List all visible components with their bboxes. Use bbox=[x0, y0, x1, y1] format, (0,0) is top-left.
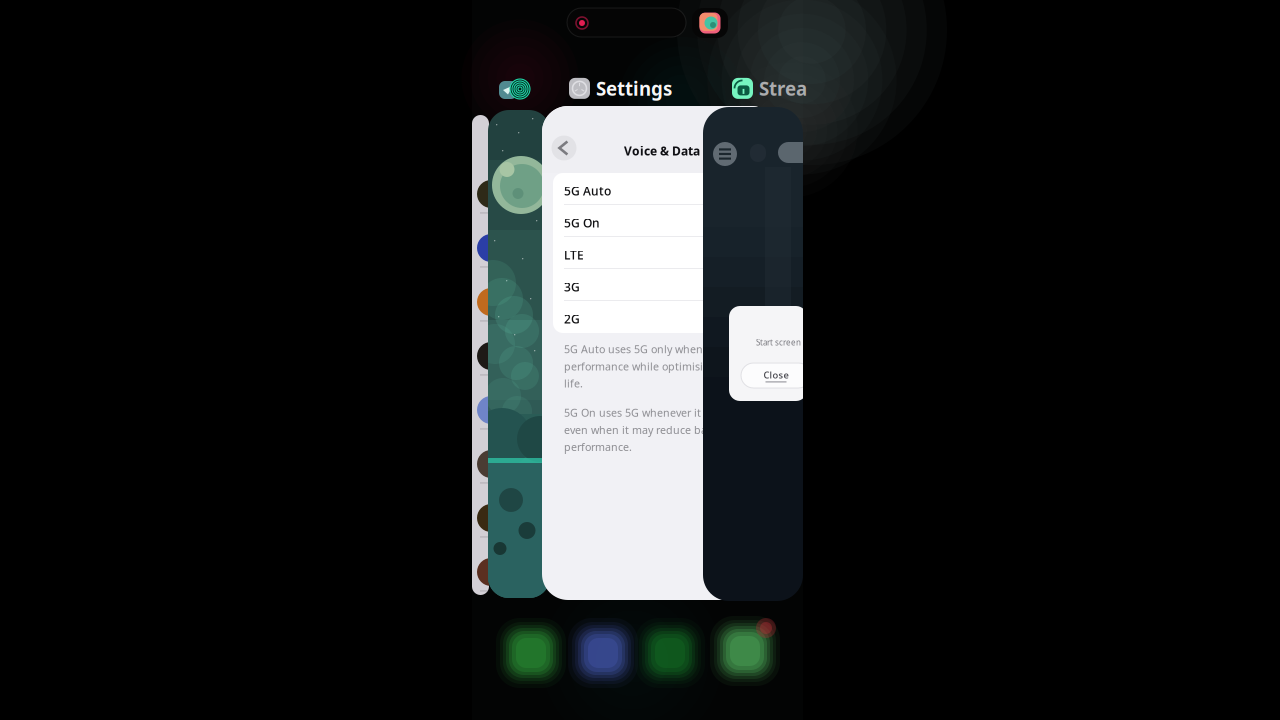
staticText: life. bbox=[564, 376, 583, 390]
button[interactable]: More bbox=[778, 142, 824, 163]
staticText: Voice & Data bbox=[624, 143, 700, 159]
staticText: even when it may reduce battery bbox=[564, 423, 730, 437]
button[interactable]: LTE bbox=[553, 237, 766, 269]
staticText: performance while optimising battery bbox=[564, 359, 756, 373]
staticText: performance. bbox=[564, 440, 632, 454]
staticText: LTE bbox=[564, 247, 584, 263]
button[interactable]: 3G bbox=[553, 269, 766, 301]
button[interactable]: 5G Auto bbox=[553, 173, 766, 205]
button[interactable]: 2G bbox=[553, 301, 766, 333]
button[interactable]: Menu bbox=[710, 139, 740, 169]
staticText: 3G bbox=[564, 279, 580, 295]
staticText: 5G Auto uses 5G only when needed for bet… bbox=[564, 342, 777, 356]
staticText: Settings bbox=[596, 76, 672, 101]
button[interactable]: Back bbox=[549, 133, 579, 163]
staticText: 5G On bbox=[564, 215, 600, 231]
staticText: Start screen ca bbox=[756, 337, 811, 348]
staticText: 5G On uses 5G whenever it is available, bbox=[564, 405, 763, 420]
button[interactable]: Close bbox=[741, 363, 811, 388]
staticText: 2G bbox=[564, 311, 580, 327]
staticText: Close bbox=[763, 369, 788, 381]
staticText: 5G Auto bbox=[564, 183, 611, 199]
button[interactable]: 5G On bbox=[553, 205, 766, 237]
staticText: Strea bbox=[759, 76, 807, 101]
